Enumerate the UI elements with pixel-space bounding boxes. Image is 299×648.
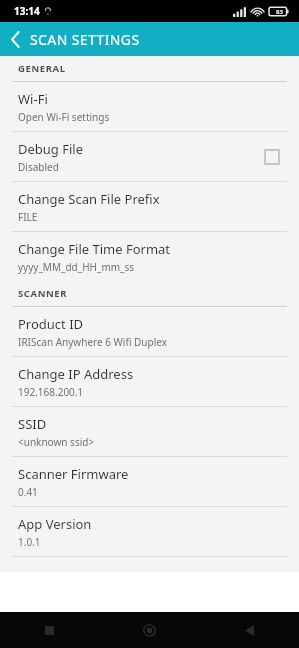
button[interactable]: Debug File toggle <box>259 144 285 170</box>
button[interactable]: Scanner Firmware <box>0 457 299 506</box>
staticText: Disabled <box>18 160 59 174</box>
button[interactable]: Back <box>0 22 30 56</box>
staticText: FILE <box>18 210 38 224</box>
staticText: 192.168.200.1 <box>18 385 84 399</box>
staticText: SSID <box>18 415 47 433</box>
staticText: Product ID <box>18 315 84 333</box>
staticText: Wi-Fi <box>18 90 48 108</box>
staticText: IRIScan Anywhere 6 Wifi Duplex <box>18 335 167 349</box>
staticText: 13:14 <box>14 4 40 18</box>
staticText: Scanner Firmware <box>18 465 129 483</box>
button[interactable]: Change File Time Format <box>0 232 299 281</box>
button[interactable]: Product ID <box>0 307 299 356</box>
button[interactable]: Home <box>99 612 199 648</box>
button[interactable]: Debug File <box>0 132 299 181</box>
staticText: SCANNER <box>18 287 68 300</box>
button[interactable]: SSID <box>0 407 299 456</box>
staticText: Debug File <box>18 140 84 158</box>
button[interactable]: Change IP Address <box>0 357 299 406</box>
button[interactable]: Recents <box>0 612 99 648</box>
staticText: GENERAL <box>18 62 66 75</box>
staticText: SCAN SETTINGS <box>30 30 140 49</box>
staticText: yyyy_MM_dd_HH_mm_ss <box>18 260 135 274</box>
button[interactable]: Back <box>199 612 299 648</box>
staticText: Change File Time Format <box>18 240 171 258</box>
staticText: <unknown ssid> <box>18 435 95 449</box>
button[interactable]: Wi-Fi <box>0 82 299 131</box>
staticText: Change IP Address <box>18 365 134 383</box>
staticText: Open Wi-Fi settings <box>18 110 110 124</box>
staticText: 83 <box>276 8 283 16</box>
button[interactable]: Change Scan File Prefix <box>0 182 299 231</box>
staticText: Change Scan File Prefix <box>18 190 160 208</box>
button[interactable]: App Version <box>0 507 299 556</box>
staticText: 1.0.1 <box>18 535 41 549</box>
staticText: 0.41 <box>18 485 38 499</box>
staticText: App Version <box>18 515 92 533</box>
